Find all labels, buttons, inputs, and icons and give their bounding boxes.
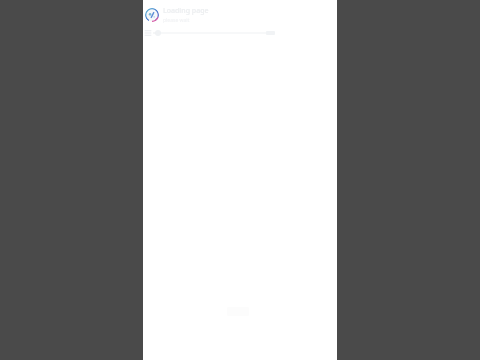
button[interactable]: Menu <box>143 27 337 39</box>
staticText: Loading page <box>163 6 209 16</box>
button[interactable]: App logo <box>143 5 337 25</box>
staticText: please wait <box>163 17 190 24</box>
button[interactable]: App logo <box>145 8 159 22</box>
button[interactable]: Seek position <box>155 30 161 36</box>
button[interactable]: Menu <box>144 29 152 37</box>
